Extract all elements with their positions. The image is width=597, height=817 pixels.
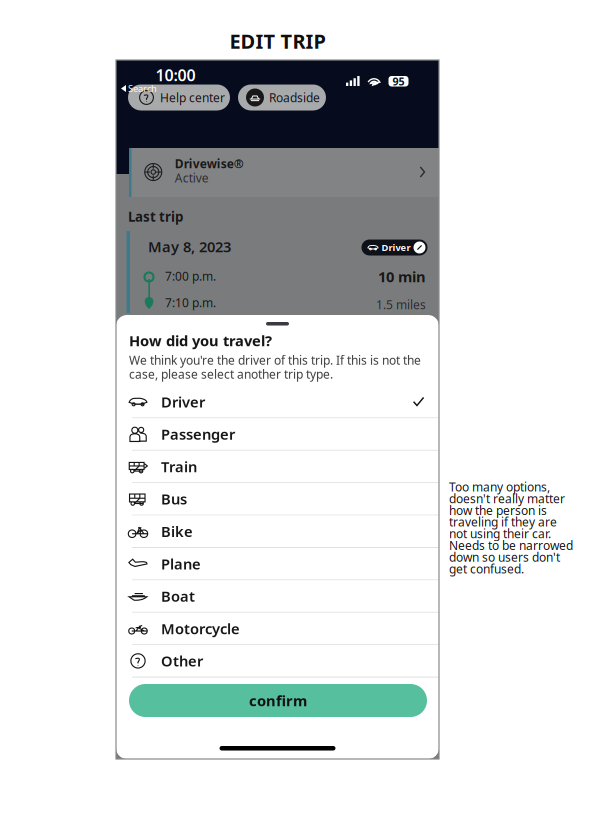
button[interactable]: Bike xyxy=(116,516,439,548)
staticText: 10 min xyxy=(378,267,426,286)
button[interactable]: Driver xyxy=(116,386,439,418)
staticText: Needs to be narrowed xyxy=(449,537,573,553)
staticText: not using their car. xyxy=(449,526,551,542)
staticText: Passenger xyxy=(161,424,235,444)
staticText: Driver xyxy=(161,392,205,411)
button[interactable]: Help center xyxy=(128,84,230,110)
staticText: How did you travel? xyxy=(129,331,272,350)
staticText: Train xyxy=(161,457,197,476)
button[interactable]: Train xyxy=(116,451,439,483)
staticText: Too many options, xyxy=(449,479,550,495)
staticText: Other xyxy=(161,651,203,671)
staticText: Driver xyxy=(381,241,410,254)
button[interactable]: Passenger xyxy=(116,418,439,451)
button[interactable]: Plane xyxy=(116,548,439,580)
staticText: May 8, 2023 xyxy=(148,237,231,256)
button[interactable]: Back to Search xyxy=(121,84,161,93)
staticText: traveling if they are xyxy=(449,514,557,530)
staticText: down so users don't xyxy=(449,549,560,565)
staticText: doesn't really matter xyxy=(449,491,565,506)
staticText: Bus xyxy=(161,489,187,509)
staticText: get confused. xyxy=(449,561,524,577)
staticText: Drivewise® xyxy=(175,156,244,171)
staticText: Boat xyxy=(161,586,195,606)
staticText: Roadside xyxy=(269,89,320,105)
staticText: Last trip xyxy=(128,208,183,225)
staticText: confirm xyxy=(249,691,307,710)
staticText: Search xyxy=(128,82,157,95)
staticText: EDIT TRIP xyxy=(229,28,325,54)
staticText: case, please select another trip type. xyxy=(129,366,333,382)
button[interactable]: Boat xyxy=(116,580,439,613)
staticText: 1.5 miles xyxy=(376,296,426,312)
button[interactable]: Motorcycle xyxy=(116,613,439,645)
staticText: how the person is xyxy=(449,502,547,518)
staticText: 10:00 xyxy=(155,64,195,86)
button[interactable]: Other xyxy=(116,645,439,678)
staticText: Active xyxy=(175,170,209,186)
button[interactable]: Drivewise® xyxy=(129,148,439,197)
staticText: Help center xyxy=(160,89,225,105)
staticText: 7:10 p.m. xyxy=(165,294,216,310)
staticText: 95 xyxy=(392,74,404,88)
staticText: Motorcycle xyxy=(161,619,240,638)
button[interactable]: Roadside xyxy=(238,84,326,110)
staticText: 7:00 p.m. xyxy=(165,268,216,284)
staticText: Bike xyxy=(161,522,193,541)
staticText: Plane xyxy=(161,554,201,573)
button[interactable]: Bus xyxy=(116,483,439,516)
staticText: We think you're the driver of this trip.… xyxy=(129,352,421,368)
button[interactable]: confirm xyxy=(129,684,427,717)
